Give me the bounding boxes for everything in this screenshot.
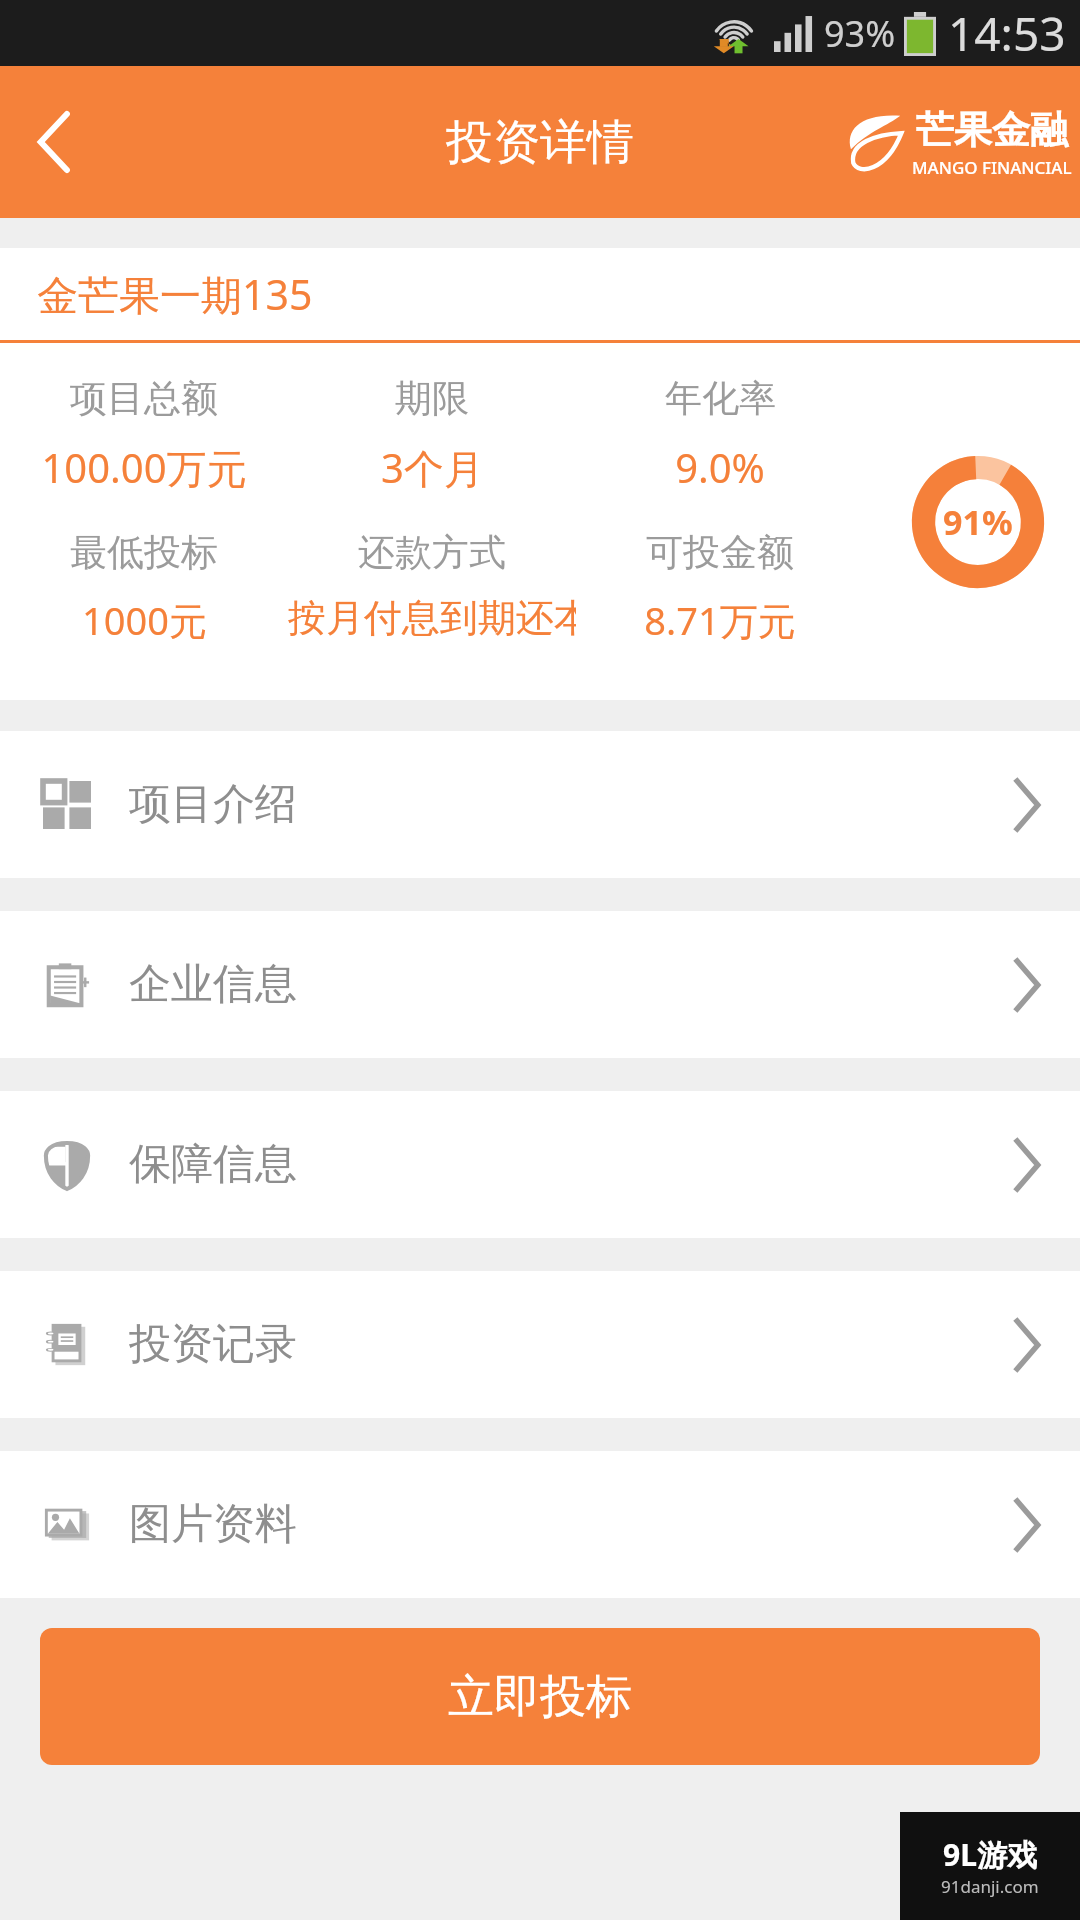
staticText: 项目介绍 <box>129 778 297 831</box>
button[interactable]: 保障信息 <box>0 1091 1080 1238</box>
staticText: MANGO FINANCIAL <box>912 156 1072 179</box>
staticText: 图片资料 <box>129 1498 297 1551</box>
staticText: 最低投标 <box>70 529 218 576</box>
button[interactable]: 立即投标 <box>40 1628 1040 1765</box>
staticText: 3个月 <box>381 440 484 495</box>
staticText: 9.0% <box>675 440 765 494</box>
staticText: 93% <box>824 9 896 58</box>
staticText: 14:53 <box>948 2 1066 65</box>
staticText: 可投金额 <box>646 529 794 576</box>
staticText: 芒果金融 <box>916 106 1068 154</box>
staticText: 9L游戏 <box>943 1834 1037 1875</box>
staticText: 保障信息 <box>129 1138 297 1191</box>
button[interactable]: 企业信息 <box>0 911 1080 1058</box>
staticText: 91danji.com <box>941 1875 1039 1898</box>
staticText: 期限 <box>395 375 469 422</box>
staticText: 8.71万元 <box>644 594 796 646</box>
staticText: 金芒果一期135 <box>37 266 313 322</box>
staticText: 投资详情 <box>446 113 634 172</box>
staticText: 年化率 <box>665 375 776 422</box>
staticText: 还款方式 <box>358 529 506 576</box>
staticText: 按月付息到期还本 <box>288 594 576 642</box>
staticText: 项目总额 <box>70 375 218 422</box>
staticText: 100.00万元 <box>41 440 247 495</box>
staticText: 91% <box>943 499 1013 545</box>
button[interactable]: Back <box>0 87 110 197</box>
staticText: 立即投标 <box>448 1668 632 1726</box>
button[interactable]: 项目介绍 <box>0 731 1080 878</box>
staticText: 企业信息 <box>129 958 297 1011</box>
staticText: 投资记录 <box>129 1318 297 1371</box>
staticText: 1000元 <box>82 594 207 646</box>
button[interactable]: 投资记录 <box>0 1271 1080 1418</box>
button[interactable]: 图片资料 <box>0 1451 1080 1598</box>
